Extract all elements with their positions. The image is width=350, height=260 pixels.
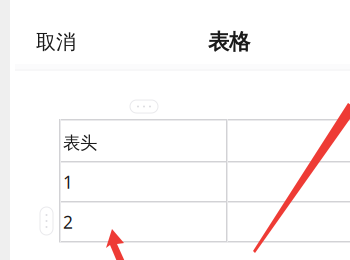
button[interactable]: 表头	[60, 120, 226, 161]
button[interactable]: Column handle	[130, 100, 158, 113]
button[interactable]: 取消	[36, 27, 96, 57]
button[interactable]: 2	[60, 202, 226, 241]
staticText: 取消	[36, 30, 76, 54]
staticText: 表格	[208, 29, 250, 55]
staticText: 1	[63, 170, 73, 193]
button[interactable]: Row handle	[40, 207, 53, 235]
staticText: 表头	[63, 132, 97, 154]
button[interactable]: Empty cell	[227, 202, 350, 241]
staticText: 2	[63, 210, 73, 233]
button[interactable]: Empty cell	[227, 120, 350, 161]
button[interactable]: 1	[60, 162, 226, 201]
button[interactable]: Empty cell	[227, 162, 350, 201]
